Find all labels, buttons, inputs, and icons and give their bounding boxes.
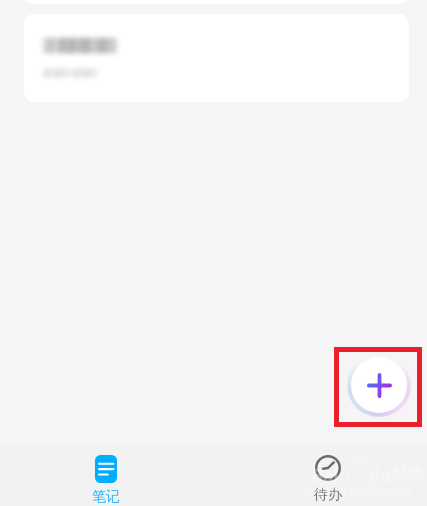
button[interactable]: Add note: [351, 357, 407, 413]
staticText: jingyan.baidu.com: [302, 482, 413, 498]
staticText: 待办: [314, 486, 342, 504]
staticText: 笔记: [92, 488, 120, 506]
staticText: Bai: [312, 464, 339, 487]
button[interactable]: [24, 14, 409, 102]
button[interactable]: 待办: [292, 445, 364, 506]
button[interactable]: 笔记: [70, 445, 142, 506]
